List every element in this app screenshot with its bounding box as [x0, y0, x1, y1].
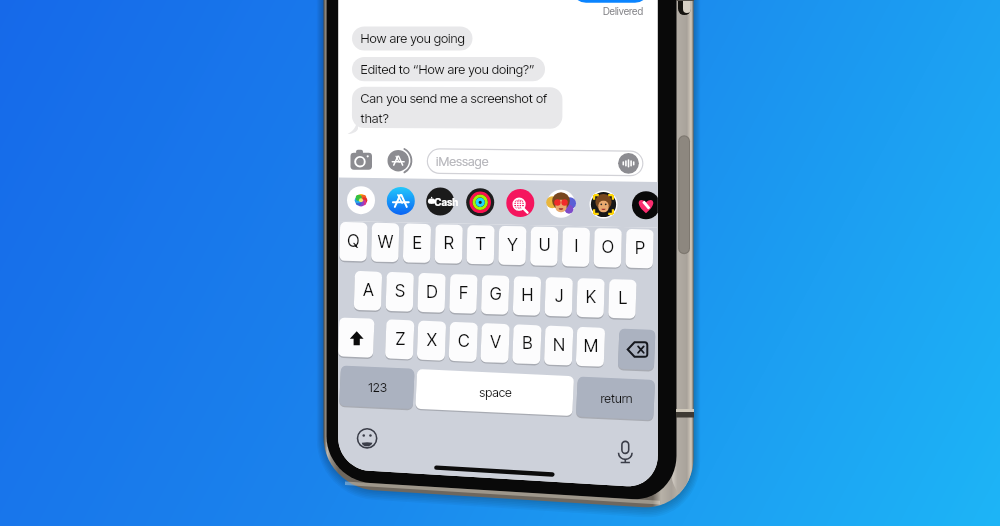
button[interactable]: iPhone showing an iMessage conversation: [0, 0, 1000, 526]
